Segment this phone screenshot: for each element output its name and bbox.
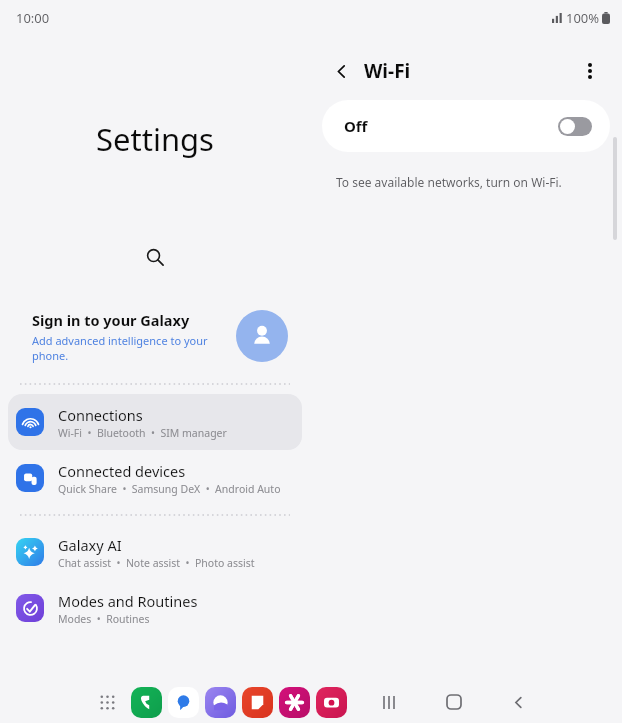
button[interactable]: Galaxy AI (8, 524, 302, 580)
staticText: phone. (32, 348, 69, 363)
button[interactable]: Sign in to your Galaxy (0, 292, 310, 380)
staticText: Off (344, 116, 368, 136)
button[interactable]: Recents (372, 684, 408, 720)
staticText: Connections (58, 405, 143, 425)
button[interactable]: Back (326, 56, 356, 86)
staticText: Connected devices (58, 461, 186, 481)
staticText: Sign in to your Galaxy (32, 310, 190, 330)
staticText: 100% (566, 9, 600, 27)
button[interactable]: Off (322, 100, 610, 152)
staticText: Modes • Routines (58, 612, 150, 626)
button[interactable]: Connected devices (8, 450, 302, 506)
button[interactable]: Back (500, 684, 536, 720)
staticText: To see available networks, turn on Wi-Fi… (336, 174, 562, 190)
staticText: Quick Share • Samsung DeX • Android Auto (58, 482, 281, 496)
staticText: Settings (96, 118, 214, 160)
button[interactable]: Modes and Routines (8, 580, 302, 636)
button[interactable]: Search (136, 238, 174, 276)
button[interactable]: Messages (168, 687, 199, 718)
button[interactable]: Notes (242, 687, 273, 718)
staticText: Wi-Fi (364, 58, 411, 84)
staticText: Chat assist • Note assist • Photo assist (58, 556, 255, 570)
button[interactable]: Home (436, 684, 472, 720)
button[interactable]: Connections (8, 394, 302, 450)
button[interactable]: More options (574, 55, 606, 87)
staticText: Galaxy AI (58, 535, 122, 555)
button[interactable]: Camera (316, 687, 347, 718)
staticText: Add advanced intelligence to your (32, 333, 208, 348)
staticText: 10:00 (16, 9, 50, 27)
staticText: Wi-Fi • Bluetooth • SIM manager (58, 426, 227, 440)
staticText: Modes and Routines (58, 591, 198, 611)
button[interactable]: Internet (205, 687, 236, 718)
button[interactable]: Phone (131, 687, 162, 718)
button[interactable]: Apps (92, 687, 122, 717)
button[interactable]: Gallery (279, 687, 310, 718)
